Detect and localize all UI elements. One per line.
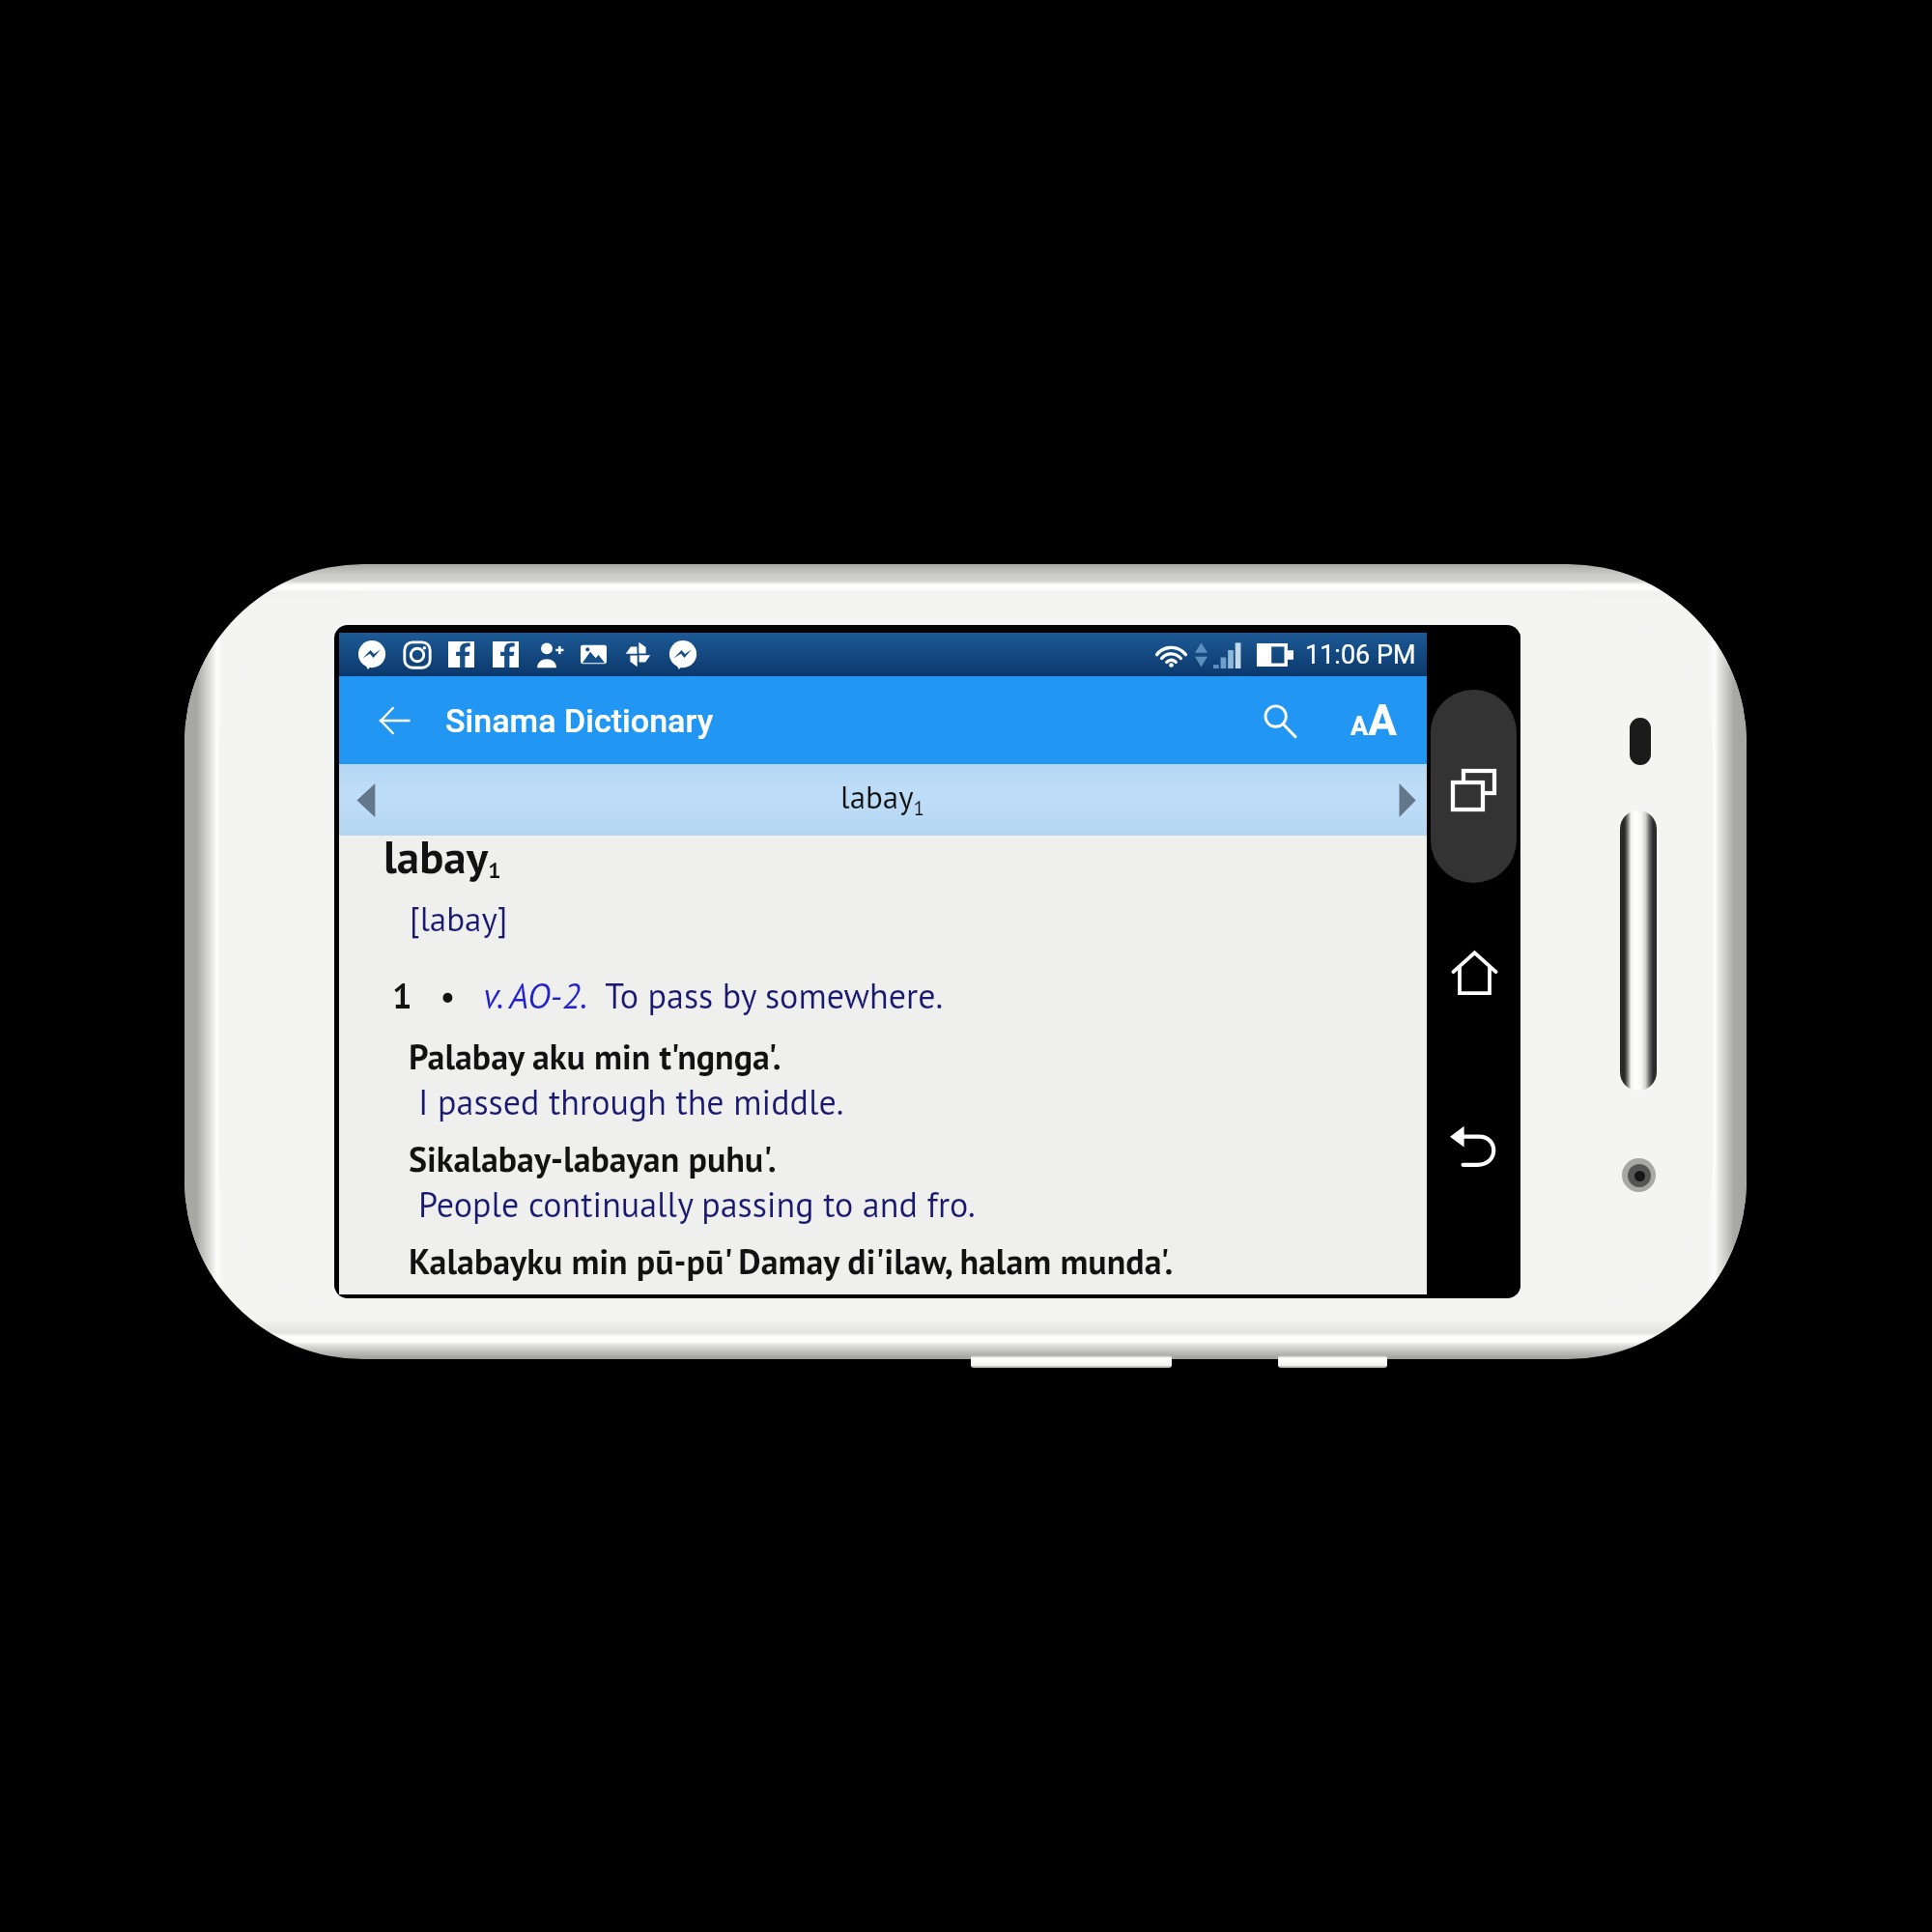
staticText: I passed through the middle. (418, 1079, 844, 1124)
button[interactable]: Navigate up (367, 694, 421, 748)
staticText: Palabay aku min t'ngnga'. (409, 1034, 781, 1079)
staticText: labay1 (384, 827, 501, 886)
staticText: Sinama Dictionary (445, 701, 714, 740)
staticText: AA (1350, 696, 1397, 746)
button[interactable]: Back (1433, 1103, 1516, 1186)
staticText: 11:06 PM (1305, 639, 1416, 670)
staticText: Sikalabay-labayan puhu'. (409, 1136, 777, 1181)
staticText: Kalabayku min pū-pū' Damay di'ilaw, hala… (409, 1238, 1174, 1284)
staticText: labay1 (840, 776, 925, 820)
staticText: 1 • v. AO-2. To pass by somewhere. (392, 973, 944, 1018)
button[interactable]: Recent apps (1431, 690, 1517, 883)
staticText: [labay] (410, 896, 508, 940)
staticText: People continually passing to and fro. (418, 1181, 976, 1227)
button[interactable]: Next entry (1386, 764, 1427, 836)
button[interactable]: Change text size (1332, 679, 1415, 762)
button[interactable]: Home (1433, 931, 1516, 1014)
button[interactable]: Previous entry (339, 764, 393, 836)
button[interactable]: Search (1226, 679, 1332, 762)
